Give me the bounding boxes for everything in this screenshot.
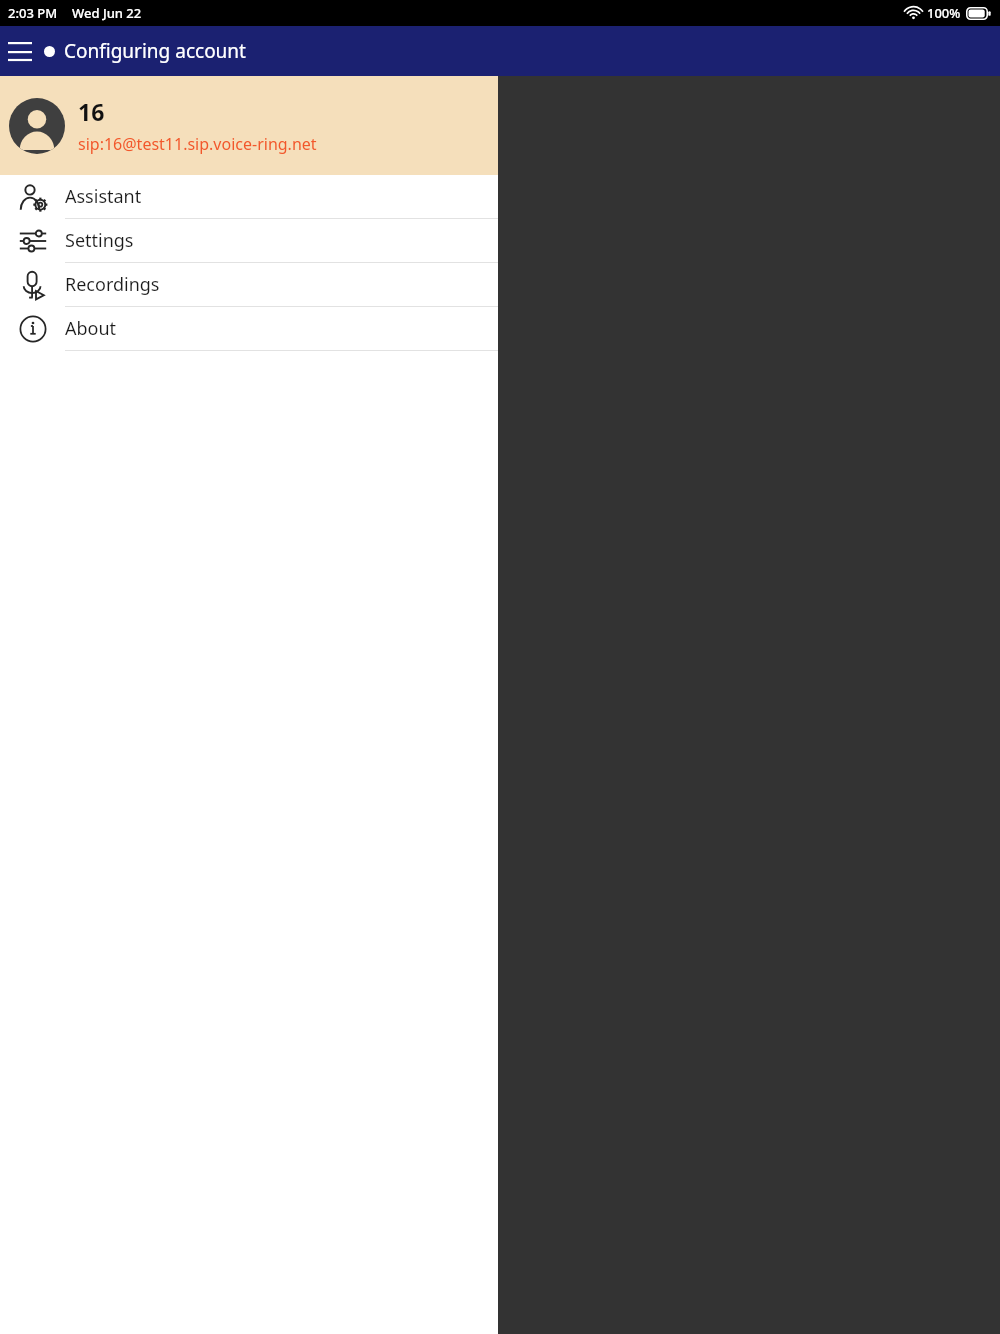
staticText: Wed Jun 22 [72, 4, 142, 22]
button[interactable]: Open navigation menu [4, 35, 36, 67]
staticText: Settings [65, 228, 134, 253]
staticText: About [65, 316, 117, 341]
staticText: Recordings [65, 272, 160, 297]
staticText: 16 [78, 96, 105, 127]
button[interactable]: Settings [0, 219, 498, 262]
staticText: 100% [927, 4, 961, 22]
staticText: Configuring account [64, 38, 246, 64]
button[interactable]: Assistant [0, 175, 498, 218]
button[interactable]: 16 [0, 76, 498, 175]
button[interactable]: About [0, 307, 498, 350]
staticText: sip:16@test11.sip.voice-ring.net [78, 133, 317, 155]
button[interactable]: Recordings [0, 263, 498, 306]
staticText: Assistant [65, 184, 142, 209]
staticText: 2:03 PM [8, 4, 58, 22]
